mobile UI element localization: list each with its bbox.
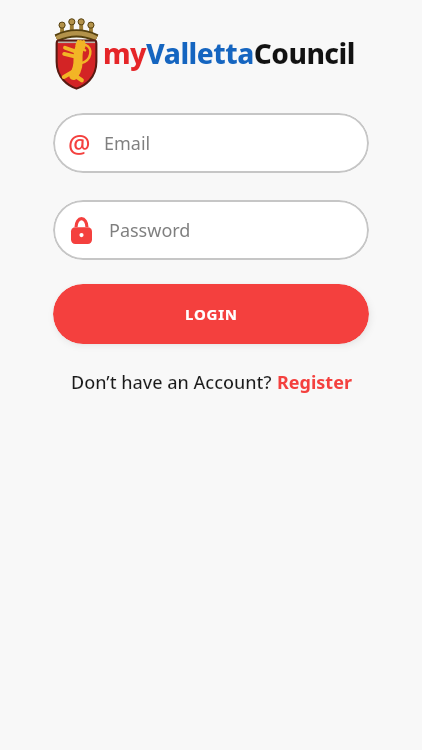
button[interactable]: Register bbox=[277, 370, 352, 395]
staticText: LOGIN bbox=[185, 304, 238, 324]
button[interactable]: @ bbox=[53, 113, 369, 173]
button[interactable]: LOGIN bbox=[53, 284, 369, 344]
staticText: myVallettaCouncil bbox=[103, 34, 355, 72]
staticText: Email bbox=[104, 131, 151, 156]
staticText: Don’t have an Account? bbox=[71, 370, 277, 395]
staticText: Password bbox=[109, 218, 191, 243]
button[interactable]: Password bbox=[53, 200, 369, 260]
staticText: @ bbox=[68, 126, 91, 160]
